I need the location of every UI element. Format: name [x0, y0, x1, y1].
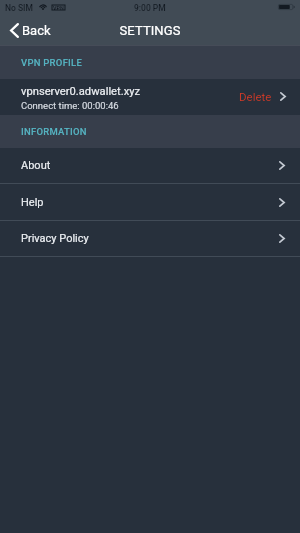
staticText: Privacy Policy [21, 232, 89, 245]
staticText: Help [21, 196, 44, 209]
button[interactable]: Back [0, 20, 61, 41]
staticText: About [21, 159, 51, 172]
button[interactable]: Delete VPN profile [229, 85, 300, 110]
staticText: Delete [239, 90, 272, 103]
button[interactable]: Privacy Policy [0, 221, 300, 256]
button[interactable]: About [0, 148, 300, 183]
staticText: VPN [53, 5, 64, 10]
staticText: INFORMATION [21, 126, 87, 137]
button[interactable]: vpnserver0.adwallet.xyz [0, 79, 300, 115]
staticText: No SIM [5, 3, 33, 13]
button[interactable]: Help [0, 184, 300, 220]
staticText: SETTINGS [119, 23, 181, 38]
staticText: 9:00 PM [134, 3, 166, 13]
staticText: VPN PROFILE [21, 57, 83, 68]
staticText: Back [22, 23, 51, 38]
staticText: Connect time: 00:00:46 [21, 100, 119, 111]
staticText: vpnserver0.adwallet.xyz [21, 85, 141, 98]
